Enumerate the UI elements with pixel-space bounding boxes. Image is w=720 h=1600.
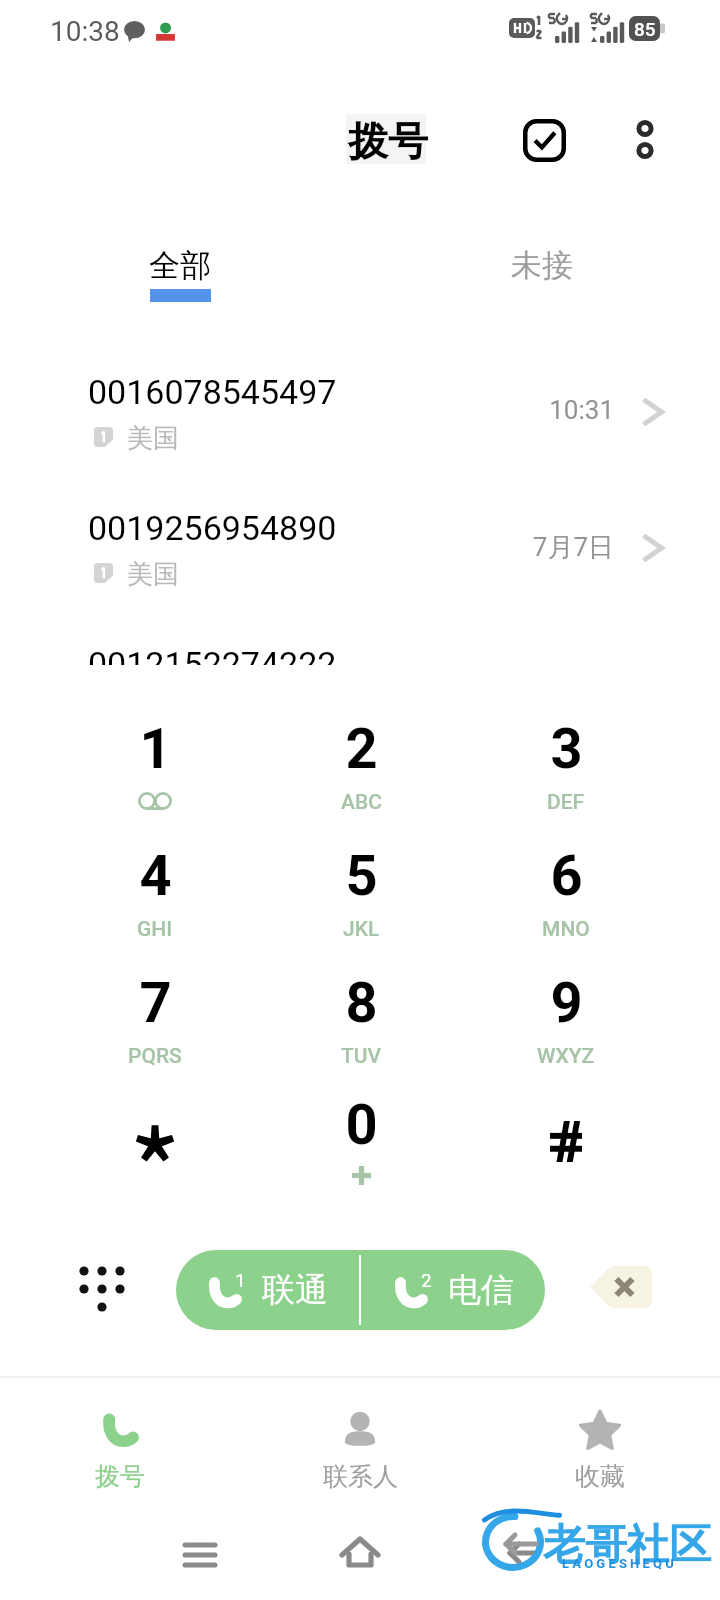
staticText: WXYZ: [537, 1044, 595, 1069]
button[interactable]: 全部: [120, 246, 240, 302]
staticText: 4: [139, 843, 172, 909]
staticText: 美国: [127, 558, 179, 591]
staticText: DEF: [547, 790, 585, 815]
button[interactable]: 2: [361, 1250, 545, 1330]
staticText: 8: [345, 970, 378, 1036]
button[interactable]: 8: [281, 970, 441, 1082]
staticText: 美国: [127, 422, 179, 455]
button[interactable]: 1: [176, 1250, 359, 1330]
button[interactable]: 6: [486, 843, 646, 955]
button[interactable]: 0016078545497: [0, 344, 720, 480]
button[interactable]: 0019256954890: [0, 480, 720, 616]
staticText: MNO: [542, 917, 590, 942]
button[interactable]: 9: [486, 970, 646, 1082]
staticText: 联通: [262, 1269, 328, 1311]
staticText: 2: [345, 716, 378, 782]
staticText: 0: [345, 1092, 378, 1158]
button[interactable]: 未接: [511, 246, 573, 285]
button[interactable]: [75, 1092, 235, 1204]
staticText: 7月7日: [532, 531, 614, 564]
staticText: 1: [235, 1269, 246, 1291]
button[interactable]: 7: [75, 970, 235, 1082]
button[interactable]: 拨号: [0, 1378, 240, 1508]
staticText: 10:38: [50, 15, 120, 48]
staticText: PQRS: [128, 1044, 182, 1069]
staticText: 2: [421, 1269, 432, 1291]
button[interactable]: More options: [621, 102, 669, 166]
staticText: 拨号: [348, 116, 428, 166]
button[interactable]: 2: [281, 716, 441, 828]
staticText: 0012152274222: [88, 644, 337, 684]
button[interactable]: Keypad: [62, 1243, 142, 1323]
staticText: 1: [139, 716, 172, 782]
staticText: 10:31: [549, 395, 614, 425]
button[interactable]: 0: [281, 1092, 441, 1204]
staticText: 电信: [448, 1269, 514, 1311]
staticText: 联系人: [323, 1461, 398, 1492]
staticText: LAOGESHEQU: [562, 1556, 677, 1571]
button[interactable]: 0012152274222: [0, 616, 720, 752]
staticText: 6: [550, 843, 583, 909]
button[interactable]: Home: [338, 1532, 382, 1576]
button[interactable]: 3: [486, 716, 646, 828]
button[interactable]: 5: [281, 843, 441, 955]
staticText: ABC: [341, 790, 382, 815]
staticText: 老哥社区: [543, 1519, 711, 1572]
button[interactable]: Recent apps: [178, 1532, 222, 1576]
button[interactable]: 收藏: [480, 1378, 720, 1508]
button[interactable]: [486, 1092, 646, 1204]
staticText: TUV: [341, 1044, 382, 1069]
staticText: 7: [139, 970, 172, 1036]
staticText: 3: [550, 716, 583, 782]
staticText: GHI: [137, 917, 173, 942]
staticText: 拨号: [95, 1461, 145, 1492]
button[interactable]: Select calls: [523, 119, 566, 162]
button[interactable]: Delete: [590, 1266, 652, 1308]
staticText: 0019256954890: [88, 508, 337, 548]
staticText: JKL: [343, 917, 380, 942]
staticText: 全部: [149, 246, 211, 285]
button[interactable]: 联系人: [240, 1378, 480, 1508]
button[interactable]: 1: [75, 716, 235, 828]
staticText: 9: [550, 970, 583, 1036]
staticText: 5: [345, 843, 378, 909]
staticText: 85: [634, 18, 656, 40]
button[interactable]: Back: [498, 1532, 542, 1576]
button[interactable]: 4: [75, 843, 235, 955]
staticText: 收藏: [575, 1461, 625, 1492]
staticText: 0016078545497: [88, 372, 337, 412]
